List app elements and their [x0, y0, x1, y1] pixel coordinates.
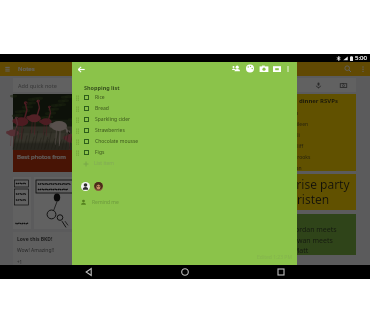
button[interactable]: More options: [283, 64, 293, 74]
staticText: Notes: [18, 65, 35, 73]
button[interactable]: Chocolate mousse: [72, 136, 297, 147]
button[interactable]: Bread: [72, 103, 297, 114]
staticText: Remind me: [92, 199, 119, 206]
button[interactable]: Rice: [72, 92, 297, 103]
staticText: Eileen: [294, 121, 309, 128]
staticText: Jordan meets Ewan meets Matt: [293, 225, 337, 255]
staticText: Best photos from the zoo: [17, 153, 72, 161]
staticText: Bread: [95, 105, 109, 112]
staticText: Cliff: [294, 143, 304, 150]
staticText: Add quick note: [18, 82, 57, 89]
staticText: Wedding dinner RSVPs: [271, 97, 338, 105]
button[interactable]: Figs: [72, 147, 297, 158]
staticText: Wow! Amazing!!: [17, 247, 55, 254]
button[interactable]: Recent apps: [274, 265, 288, 279]
button[interactable]: Change colour: [245, 64, 255, 74]
staticText: Brooks: [294, 154, 311, 161]
staticText: +1: [17, 259, 23, 265]
button[interactable]: Home: [178, 265, 192, 279]
button[interactable]: Sparkling cider: [72, 114, 297, 125]
button[interactable]: [34, 177, 72, 229]
staticText: List item: [94, 160, 115, 167]
button[interactable]: Best photos from the zoo: [13, 94, 72, 172]
button[interactable]: Jordan meets Ewan meets Matt: [246, 214, 356, 255]
staticText: Surprise party for Kristen: [270, 176, 350, 207]
button[interactable]: [246, 78, 356, 92]
staticText: Figs: [95, 149, 105, 156]
button[interactable]: Menu: [5, 65, 10, 73]
staticText: Love this BKD!: [17, 236, 53, 243]
button[interactable]: Love this BKD!: [13, 232, 72, 265]
staticText: Ali: [294, 132, 300, 139]
staticText: Ian: [294, 165, 302, 171]
button[interactable]: Archive: [272, 64, 282, 74]
button[interactable]: Search: [344, 65, 352, 73]
staticText: Jo: [294, 110, 299, 117]
button[interactable]: Back: [82, 265, 96, 279]
button[interactable]: Strawberries: [72, 125, 297, 136]
button[interactable]: Back: [76, 64, 87, 75]
button[interactable]: Add collaborator: [231, 64, 241, 74]
button[interactable]: [13, 177, 31, 229]
staticText: Chocolate mousse: [95, 138, 139, 145]
staticText: Rice: [95, 94, 105, 101]
staticText: Sparkling cider: [95, 116, 131, 123]
staticText: Shopping list: [84, 84, 120, 91]
staticText: Strawberries: [95, 127, 125, 134]
button[interactable]: Surprise party for Kristen: [246, 174, 356, 210]
staticText: Edited 1:23 PM: [257, 254, 292, 261]
button[interactable]: Remind me: [80, 199, 119, 206]
button[interactable]: Wedding dinner RSVPs: [246, 94, 356, 171]
button[interactable]: Add image: [259, 64, 269, 74]
button[interactable]: More options: [359, 65, 367, 73]
staticText: 5:00: [355, 54, 367, 62]
button[interactable]: Add quick note: [13, 78, 72, 92]
